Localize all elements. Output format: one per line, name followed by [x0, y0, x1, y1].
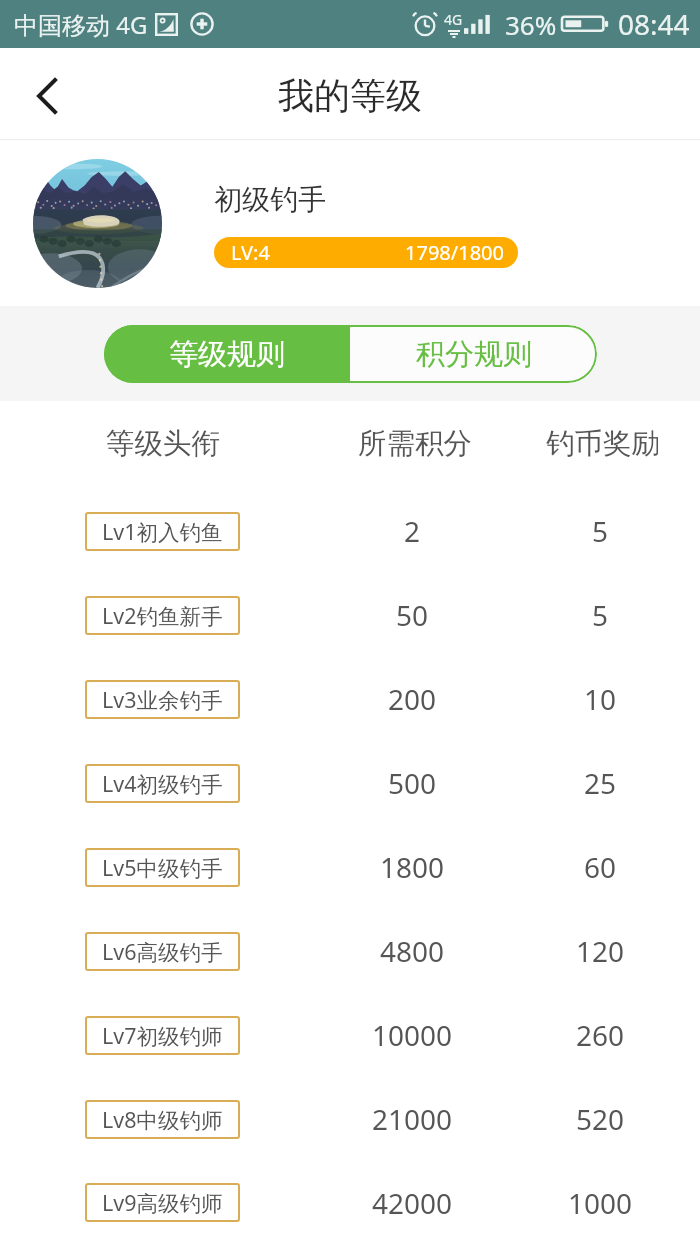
staticText: 1000	[568, 1184, 633, 1222]
staticText: 4800	[380, 932, 445, 970]
button[interactable]: Lv9高级钓师	[0, 1161, 700, 1244]
staticText: Lv6高级钓手	[102, 937, 223, 966]
button[interactable]: Lv4初级钓手	[0, 741, 700, 825]
staticText: 4G	[444, 10, 463, 29]
staticText: 36%	[505, 7, 557, 42]
staticText: LV:4	[231, 239, 270, 266]
staticText: 500	[388, 764, 437, 802]
staticText: Lv2钓鱼新手	[102, 601, 223, 630]
staticText: 50	[396, 596, 429, 634]
button[interactable]: Lv1初入钓鱼	[0, 489, 700, 573]
staticText: 我的等级	[278, 73, 422, 118]
staticText: 42000	[372, 1184, 453, 1222]
staticText: 5	[592, 596, 609, 634]
staticText: 所需积分	[358, 426, 472, 462]
staticText: 等级头衔	[106, 426, 220, 462]
staticText: 21000	[372, 1100, 453, 1138]
staticText: 10	[584, 680, 617, 718]
button[interactable]: Lv5中级钓手	[0, 825, 700, 909]
staticText: Lv7初级钓师	[102, 1021, 223, 1050]
staticText: 260	[576, 1016, 625, 1054]
staticText: 1800	[380, 848, 445, 886]
staticText: 08:44	[618, 5, 690, 43]
staticText: Lv3业余钓手	[102, 685, 223, 714]
button[interactable]: Back	[12, 59, 82, 129]
staticText: 5	[592, 512, 609, 550]
staticText: 钓币奖励	[546, 426, 660, 462]
staticText: 中国移动 4G	[14, 8, 148, 41]
staticText: 520	[576, 1100, 625, 1138]
staticText: 25	[584, 764, 617, 802]
staticText: 初级钓手	[214, 182, 326, 217]
staticText: Lv4初级钓手	[102, 769, 223, 798]
button[interactable]: Lv3业余钓手	[0, 657, 700, 741]
button[interactable]: Lv2钓鱼新手	[0, 573, 700, 657]
button[interactable]: Lv7初级钓师	[0, 993, 700, 1077]
staticText: 10000	[372, 1016, 453, 1054]
button[interactable]: Lv8中级钓师	[0, 1077, 700, 1161]
staticText: 积分规则	[416, 336, 532, 373]
staticText: Lv9高级钓师	[102, 1188, 223, 1217]
staticText: Lv8中级钓师	[102, 1105, 223, 1134]
staticText: 1798/1800	[405, 239, 504, 266]
staticText: 60	[584, 848, 617, 886]
staticText: 2	[404, 512, 421, 550]
button[interactable]: 等级规则	[104, 325, 350, 383]
staticText: Lv1初入钓鱼	[102, 517, 223, 546]
button[interactable]: 积分规则	[350, 325, 597, 383]
staticText: 120	[576, 932, 625, 970]
staticText: Lv5中级钓手	[102, 853, 223, 882]
staticText: 200	[388, 680, 437, 718]
button[interactable]: Lv6高级钓手	[0, 909, 700, 993]
staticText: 等级规则	[169, 336, 285, 373]
